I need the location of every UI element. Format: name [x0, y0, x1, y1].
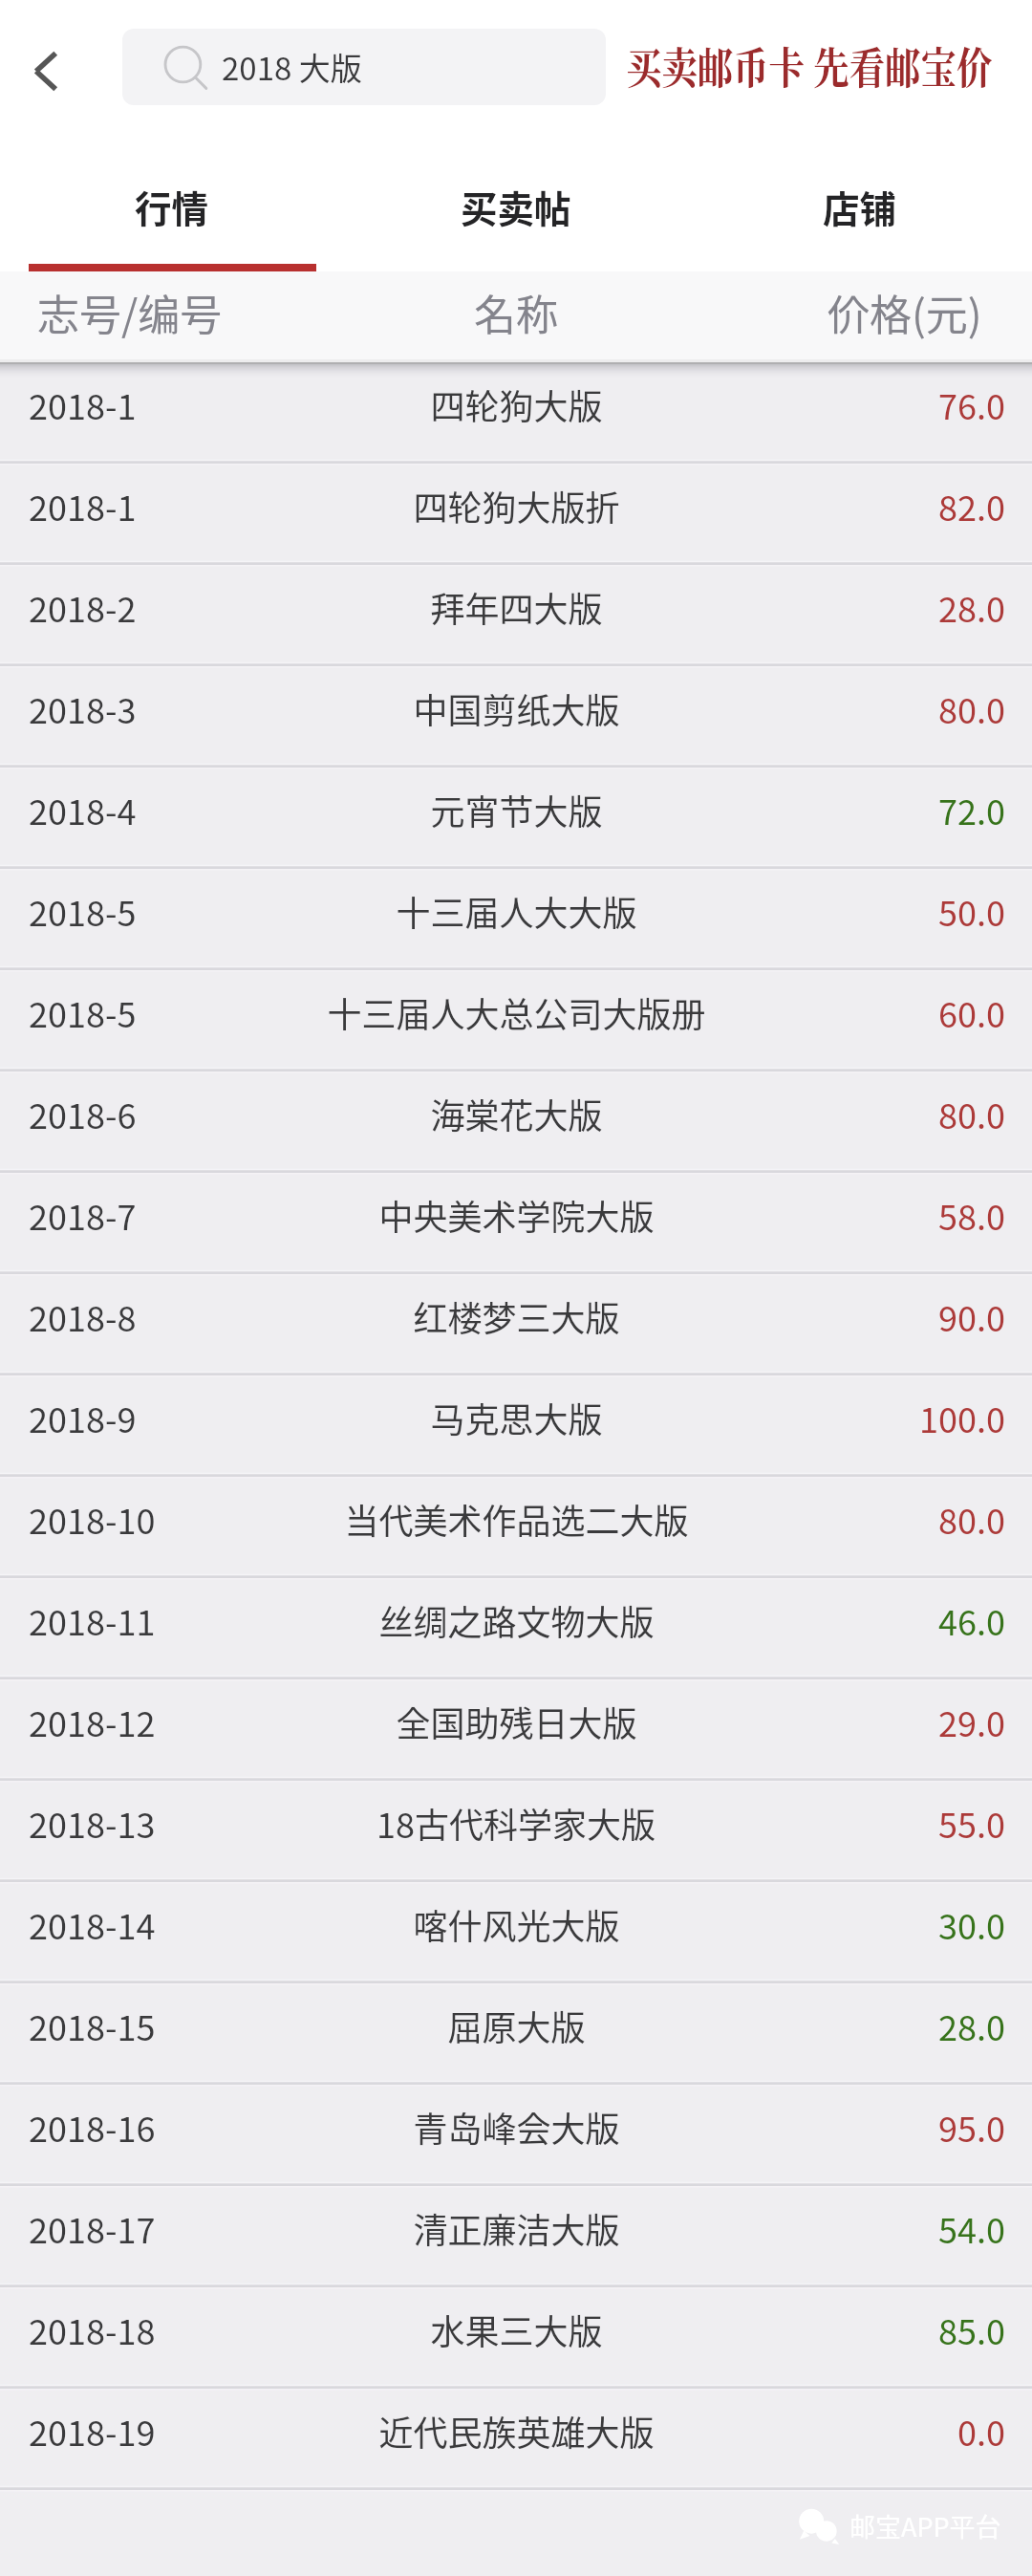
staticText: 全国助残日大版	[396, 1697, 637, 1746]
staticText: 2018-1	[29, 379, 137, 429]
button[interactable]: 2018 大版	[122, 29, 606, 105]
button[interactable]: 2018-12	[0, 1678, 1032, 1780]
staticText: 80.0	[938, 1494, 1005, 1544]
staticText: 72.0	[938, 785, 1005, 834]
staticText: 82.0	[938, 481, 1005, 530]
staticText: 60.0	[938, 987, 1005, 1037]
staticText: 丝绸之路文物大版	[378, 1595, 655, 1645]
staticText: 85.0	[938, 2305, 1005, 2354]
staticText: 30.0	[938, 1899, 1005, 1949]
staticText: 十三届人大总公司大版册	[327, 987, 706, 1037]
button[interactable]: 2018-13	[0, 1780, 1032, 1881]
staticText: 马克思大版	[430, 1393, 603, 1442]
staticText: 志号/编号	[37, 282, 223, 343]
staticText: 2018-9	[29, 1393, 137, 1442]
staticText: 四轮狗大版	[430, 379, 603, 429]
button[interactable]: 2018-11	[0, 1577, 1032, 1678]
staticText: 2018-6	[29, 1089, 137, 1138]
button[interactable]: 2018-4	[0, 767, 1032, 868]
staticText: 屈原大版	[447, 2001, 586, 2050]
staticText: 2018 大版	[222, 44, 362, 90]
button[interactable]: 2018-19	[0, 2388, 1032, 2489]
staticText: 2018-18	[29, 2305, 156, 2354]
button[interactable]: 2018-10	[0, 1476, 1032, 1577]
staticText: 80.0	[938, 1089, 1005, 1138]
staticText: 2018-1	[29, 481, 137, 530]
staticText: 红楼梦三大版	[413, 1291, 620, 1341]
staticText: 2018-7	[29, 1190, 137, 1240]
staticText: 90.0	[938, 1291, 1005, 1341]
staticText: 当代美术作品选二大版	[344, 1494, 689, 1544]
staticText: 邮宝APP平台	[849, 2507, 1001, 2544]
staticText: 海棠花大版	[430, 1089, 603, 1138]
button[interactable]: 2018-6	[0, 1071, 1032, 1172]
staticText: 2018-14	[29, 1899, 156, 1949]
button[interactable]: 2018-1	[0, 463, 1032, 564]
staticText: 店铺	[823, 180, 897, 233]
staticText: 2018-3	[29, 683, 137, 733]
staticText: 50.0	[938, 886, 1005, 936]
staticText: 54.0	[938, 2203, 1005, 2253]
staticText: 80.0	[938, 683, 1005, 733]
staticText: 行情	[135, 180, 209, 233]
staticText: 0.0	[957, 2406, 1005, 2456]
button[interactable]: 2018-3	[0, 665, 1032, 767]
staticText: 55.0	[938, 1798, 1005, 1848]
staticText: 28.0	[938, 2001, 1005, 2050]
staticText: 拜年四大版	[430, 582, 603, 632]
staticText: 元宵节大版	[430, 785, 603, 834]
staticText: 18古代科学家大版	[376, 1798, 656, 1848]
staticText: 95.0	[938, 2102, 1005, 2152]
staticText: 2018-2	[29, 582, 137, 632]
staticText: 清正廉洁大版	[413, 2203, 620, 2253]
button[interactable]: 2018-17	[0, 2185, 1032, 2286]
staticText: 29.0	[938, 1697, 1005, 1746]
staticText: 2018-15	[29, 2001, 156, 2050]
button[interactable]: 2018-5	[0, 969, 1032, 1071]
staticText: 买卖邮币卡 先看邮宝价	[626, 34, 993, 97]
staticText: 2018-10	[29, 1494, 156, 1544]
button[interactable]: 2018-14	[0, 1881, 1032, 1982]
staticText: 2018-12	[29, 1697, 156, 1746]
button[interactable]: 2018-2	[0, 564, 1032, 665]
staticText: 名称	[474, 282, 558, 343]
staticText: 58.0	[938, 1190, 1005, 1240]
button[interactable]: 2018-7	[0, 1172, 1032, 1273]
staticText: 青岛峰会大版	[413, 2102, 620, 2152]
staticText: 2018-8	[29, 1291, 137, 1341]
button[interactable]: 买卖帖	[344, 141, 688, 271]
staticText: 2018-5	[29, 886, 137, 936]
staticText: 十三届人大大版	[396, 886, 637, 936]
button[interactable]: 2018-18	[0, 2286, 1032, 2388]
button[interactable]: 2018-1	[0, 361, 1032, 463]
staticText: 中央美术学院大版	[378, 1190, 655, 1240]
staticText: 100.0	[919, 1393, 1005, 1442]
staticText: 76.0	[938, 379, 1005, 429]
button[interactable]: 店铺	[688, 141, 1032, 271]
button[interactable]: Back	[0, 0, 92, 141]
staticText: 2018-19	[29, 2406, 156, 2456]
staticText: 2018-11	[29, 1595, 156, 1645]
button[interactable]: 2018-16	[0, 2084, 1032, 2185]
staticText: 2018-4	[29, 785, 137, 834]
staticText: 46.0	[938, 1595, 1005, 1645]
staticText: 近代民族英雄大版	[378, 2406, 655, 2456]
button[interactable]: 2018-8	[0, 1273, 1032, 1375]
staticText: 2018-16	[29, 2102, 156, 2152]
staticText: 价格(元)	[828, 282, 982, 343]
staticText: 买卖帖	[461, 180, 571, 233]
staticText: 水果三大版	[430, 2305, 603, 2354]
staticText: 28.0	[938, 582, 1005, 632]
staticText: 四轮狗大版折	[413, 481, 620, 530]
button[interactable]: 行情	[0, 141, 344, 271]
staticText: 2018-5	[29, 987, 137, 1037]
staticText: 2018-13	[29, 1798, 156, 1848]
staticText: 中国剪纸大版	[413, 683, 620, 733]
button[interactable]: 2018-9	[0, 1375, 1032, 1476]
staticText: 喀什风光大版	[413, 1899, 620, 1949]
button[interactable]: 2018-15	[0, 1982, 1032, 2084]
staticText: 2018-17	[29, 2203, 156, 2253]
button[interactable]: 2018-5	[0, 868, 1032, 969]
